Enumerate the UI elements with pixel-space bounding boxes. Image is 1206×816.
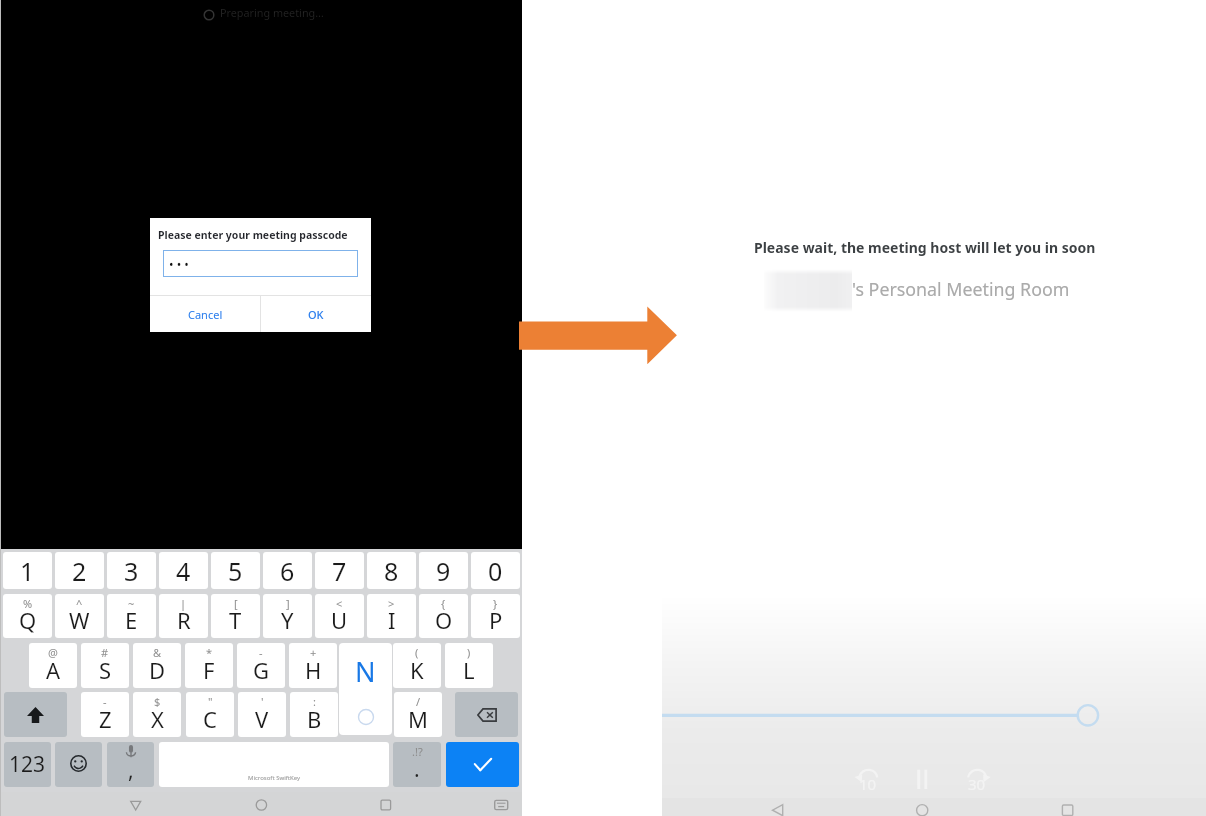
button[interactable]: Switch keyboard — [485, 792, 517, 816]
button[interactable]: Back — [762, 798, 794, 816]
button[interactable]: .!? — [393, 742, 441, 787]
staticText: Z — [99, 704, 112, 734]
button[interactable]: Backspace — [455, 692, 518, 737]
button[interactable]: Back — [118, 792, 154, 816]
staticText: 2 — [72, 554, 87, 588]
button[interactable]: Home — [243, 792, 279, 816]
button[interactable]: Recents — [368, 792, 404, 816]
button[interactable]: % — [3, 594, 52, 638]
staticText: M — [408, 704, 428, 734]
staticText: X — [151, 704, 164, 734]
button[interactable]: Rewind 10 seconds — [853, 766, 883, 796]
button[interactable]: / — [394, 692, 442, 737]
button[interactable]: Forward 30 seconds — [962, 766, 992, 796]
staticText: W — [69, 605, 90, 635]
button[interactable]: 2 — [55, 552, 104, 589]
staticText: L — [463, 655, 475, 685]
button[interactable]: 6 — [263, 552, 312, 589]
staticText: I — [388, 605, 396, 635]
staticText: > — [388, 596, 395, 611]
staticText: Microsoft SwiftKey — [248, 774, 300, 782]
button[interactable]: | — [159, 594, 208, 638]
staticText: ~ — [128, 596, 135, 611]
button[interactable]: 8 — [367, 552, 416, 589]
button[interactable]: Space — [159, 742, 389, 787]
staticText: Cancel — [188, 307, 223, 322]
staticText: O — [435, 605, 453, 635]
staticText: T — [229, 605, 242, 635]
staticText: Please enter your meeting passcode — [158, 228, 348, 242]
button[interactable]: $ — [133, 692, 181, 737]
button[interactable]: Cancel — [150, 296, 260, 332]
button[interactable]: Emoji — [55, 742, 102, 787]
button[interactable]: - — [237, 643, 285, 688]
button[interactable]: ( — [393, 643, 441, 688]
staticText: / — [416, 694, 421, 709]
button[interactable]: N — [339, 643, 392, 735]
staticText: R — [177, 605, 191, 635]
button[interactable]: [ — [211, 594, 260, 638]
staticText: 4 — [176, 554, 191, 588]
staticText: B — [307, 704, 322, 734]
staticText: E — [125, 605, 138, 635]
button[interactable]: 7 — [315, 552, 364, 589]
staticText: ^ — [76, 596, 83, 611]
staticText: A — [46, 655, 61, 685]
staticText: + — [310, 645, 317, 660]
button[interactable]: Home — [906, 798, 938, 816]
staticText: : — [313, 694, 316, 709]
staticText: - — [103, 694, 107, 709]
button[interactable]: Shift — [4, 692, 67, 737]
button[interactable]: 123 — [4, 742, 51, 787]
button[interactable]: OK — [261, 296, 371, 332]
staticText: 9 — [436, 554, 451, 588]
button[interactable]: { — [419, 594, 468, 638]
button[interactable]: ^ — [55, 594, 104, 638]
staticText: D — [149, 655, 166, 685]
button[interactable]: ) — [445, 643, 493, 688]
button[interactable]: ' — [238, 692, 286, 737]
button[interactable]: " — [186, 692, 234, 737]
staticText: ] — [286, 596, 290, 611]
staticText: $ — [154, 694, 161, 709]
button[interactable]: & — [133, 643, 181, 688]
button[interactable]: < — [315, 594, 364, 638]
staticText: 5 — [228, 554, 243, 588]
button[interactable]: 4 — [159, 552, 208, 589]
button[interactable]: Recents — [1052, 798, 1084, 816]
staticText: P — [489, 605, 503, 635]
button[interactable]: } — [471, 594, 520, 638]
button[interactable]: : — [290, 692, 338, 737]
button[interactable]: 0 — [471, 552, 520, 589]
button[interactable]: @ — [29, 643, 77, 688]
button[interactable]: 5 — [211, 552, 260, 589]
staticText: [ — [234, 596, 238, 611]
staticText: H — [305, 655, 322, 685]
button[interactable]: 9 — [419, 552, 468, 589]
staticText: * — [206, 645, 213, 660]
staticText: Please wait, the meeting host will let y… — [754, 238, 1096, 257]
staticText: , — [128, 756, 134, 785]
staticText: ( — [415, 645, 419, 660]
staticText: S — [99, 655, 112, 685]
staticText: - — [259, 645, 263, 660]
staticText: " — [208, 694, 213, 709]
staticText: • • • — [169, 256, 189, 272]
button[interactable]: ~ — [107, 594, 156, 638]
button[interactable]: * — [185, 643, 233, 688]
button[interactable]: 3 — [107, 552, 156, 589]
button[interactable]: Enter — [446, 742, 519, 787]
button[interactable]: 1 — [3, 552, 52, 589]
button[interactable]: + — [289, 643, 337, 688]
staticText: Preparing meeting… — [220, 5, 324, 20]
staticText: 6 — [280, 554, 295, 588]
button[interactable]: # — [81, 643, 129, 688]
button[interactable]: > — [367, 594, 416, 638]
staticText: V — [255, 704, 269, 734]
button[interactable]: - — [81, 692, 129, 737]
staticText: # — [101, 645, 109, 660]
button[interactable]: Pause — [907, 764, 937, 794]
button[interactable]: ] — [263, 594, 312, 638]
button[interactable]: Voice input — [107, 742, 154, 787]
staticText: 123 — [9, 750, 46, 779]
